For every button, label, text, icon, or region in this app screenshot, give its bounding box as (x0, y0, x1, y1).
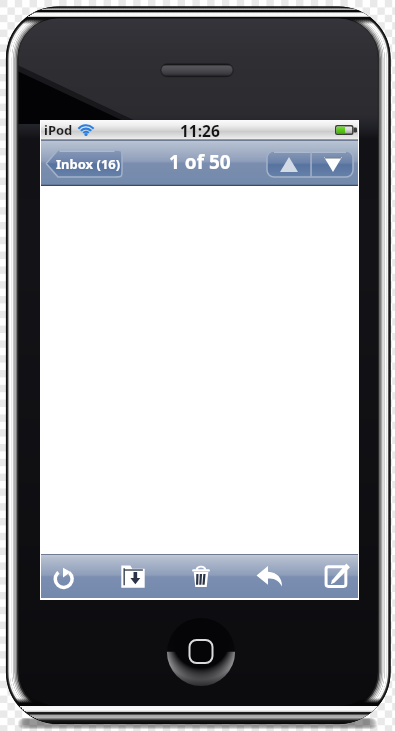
button[interactable]: Previous message (266, 150, 311, 178)
staticText: Inbox (16) (56, 155, 121, 173)
button[interactable]: Compose (305, 554, 369, 598)
staticText: iPod (44, 121, 73, 139)
button[interactable]: Inbox (16) (44, 149, 123, 178)
button[interactable]: Move to folder (101, 554, 165, 598)
button[interactable]: Reply (237, 554, 301, 598)
staticText: 11:26 (180, 120, 220, 140)
button[interactable]: Refresh (33, 554, 97, 598)
staticText: 1 of 50 (169, 149, 231, 175)
button[interactable]: Delete (169, 554, 233, 598)
button[interactable]: Next message (311, 150, 354, 178)
